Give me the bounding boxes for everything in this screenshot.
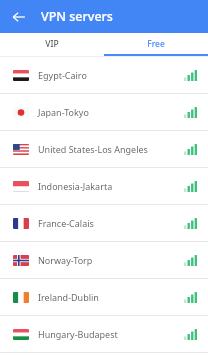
staticText: Ireland-Dublin [38, 291, 180, 303]
button[interactable]: Indonesia-Jakarta [0, 168, 208, 204]
staticText: VIP [45, 38, 59, 50]
staticText: Free [147, 38, 165, 50]
button[interactable]: Norway-Torp [0, 242, 208, 278]
button[interactable]: Back [8, 6, 30, 28]
button[interactable]: Free [104, 33, 208, 54]
button[interactable]: Egypt-Cairo [0, 57, 208, 93]
button[interactable]: Ireland-Dublin [0, 279, 208, 315]
button[interactable]: France-Calais [0, 205, 208, 241]
button[interactable]: Japan-Tokyo [0, 94, 208, 130]
staticText: Egypt-Cairo [38, 69, 180, 81]
staticText: United States-Los Angeles [38, 143, 180, 155]
staticText: Norway-Torp [38, 254, 180, 266]
staticText: VPN servers [41, 8, 113, 25]
staticText: Japan-Tokyo [38, 106, 180, 118]
staticText: France-Calais [38, 217, 180, 229]
button[interactable]: Hungary-Budapest [0, 316, 208, 352]
button[interactable]: United States-Los Angeles [0, 131, 208, 167]
staticText: Hungary-Budapest [38, 328, 180, 340]
staticText: Indonesia-Jakarta [38, 180, 180, 192]
button[interactable]: VIP [0, 33, 104, 54]
